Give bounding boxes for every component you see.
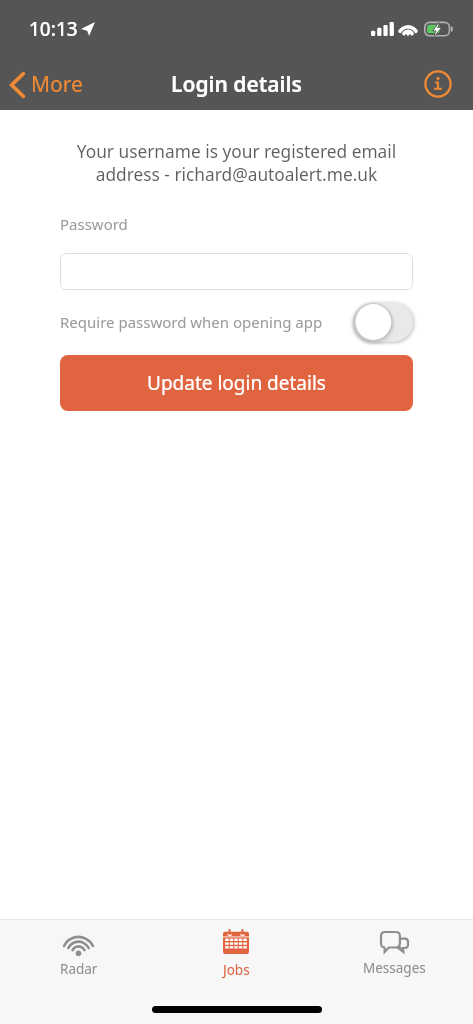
staticText: More — [31, 70, 83, 99]
staticText: 10:13 — [29, 16, 78, 42]
staticText: Radar — [60, 960, 98, 978]
button[interactable]: More — [0, 70, 93, 99]
staticText: Login details — [171, 70, 302, 99]
button[interactable]: Information — [421, 67, 455, 101]
staticText: Update login details — [147, 370, 326, 396]
staticText: Require password when opening app — [60, 312, 323, 332]
staticText: Messages — [363, 959, 426, 977]
staticText: Your username is your registered email a… — [0, 140, 473, 186]
button[interactable]: Jobs — [157, 923, 315, 985]
button[interactable]: Update login details — [60, 355, 413, 411]
button[interactable]: Radar — [0, 925, 157, 984]
staticText: Jobs — [223, 961, 250, 979]
button[interactable]: Messages — [315, 926, 473, 983]
button[interactable]: Require password toggle — [354, 302, 413, 342]
staticText: Password — [60, 214, 128, 234]
button[interactable]: Password field — [60, 253, 413, 290]
